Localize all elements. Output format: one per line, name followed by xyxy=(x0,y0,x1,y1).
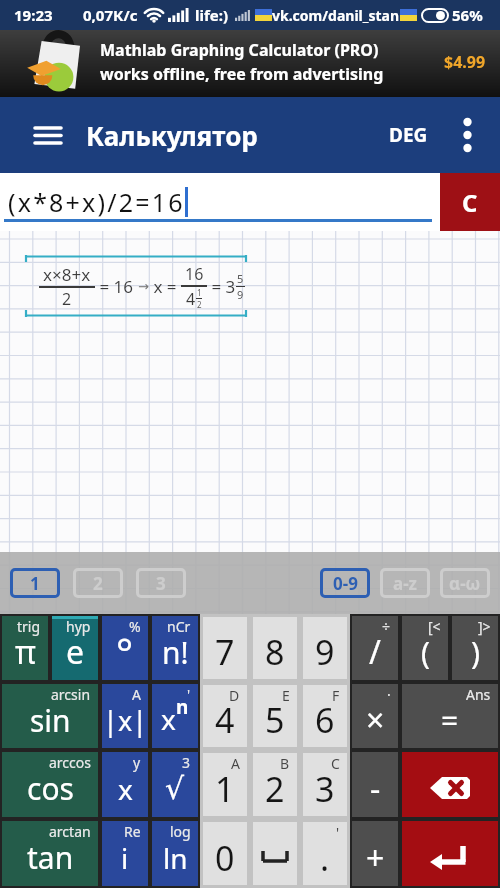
staticText: = 16 xyxy=(95,275,138,298)
button[interactable]: B xyxy=(253,753,297,816)
button[interactable]: 2 xyxy=(73,568,123,598)
staticText: 7 xyxy=(215,629,235,675)
button[interactable]: E xyxy=(253,685,297,747)
staticText: n xyxy=(176,694,189,720)
button[interactable] xyxy=(402,821,498,886)
staticText: hyp xyxy=(66,617,91,636)
staticText: x xyxy=(118,770,133,808)
staticText: 1 xyxy=(30,572,40,595)
staticText: |x| xyxy=(103,702,148,739)
staticText: Ans xyxy=(466,685,491,704)
button[interactable]: 1 xyxy=(10,568,60,598)
staticText: tan xyxy=(27,837,74,878)
staticText: 5 xyxy=(237,271,244,286)
button[interactable] xyxy=(402,752,498,817)
button[interactable]: α-ω xyxy=(440,568,490,598)
button[interactable] xyxy=(253,822,297,885)
staticText: 2 xyxy=(62,288,72,310)
staticText: 0,07К/c xyxy=(83,5,138,25)
staticText: 16 xyxy=(185,263,204,285)
staticText: A xyxy=(231,754,240,773)
button[interactable] xyxy=(454,113,480,157)
staticText: % xyxy=(129,617,141,636)
button[interactable]: log xyxy=(152,821,198,886)
staticText: 2 xyxy=(197,299,202,310)
button[interactable]: Ans xyxy=(402,684,498,748)
staticText: 19:23 xyxy=(14,5,53,25)
staticText: arctan xyxy=(49,822,91,841)
button[interactable]: C xyxy=(440,173,500,231)
button[interactable]: A xyxy=(203,753,247,816)
button[interactable]: Re xyxy=(102,821,148,886)
staticText: x xyxy=(161,700,176,738)
staticText: arccos xyxy=(49,753,91,772)
button[interactable]: % xyxy=(102,616,148,680)
staticText: Re xyxy=(124,822,141,841)
staticText: ( xyxy=(421,632,430,673)
button[interactable]: 3 xyxy=(136,568,186,598)
staticText: a-z xyxy=(393,572,418,595)
button[interactable]: · xyxy=(352,684,398,748)
button[interactable]: 7 xyxy=(203,617,247,679)
staticText: α-ω xyxy=(449,572,481,595)
button[interactable]: F xyxy=(303,685,347,747)
staticText: 4 xyxy=(215,697,235,743)
button[interactable]: C xyxy=(303,753,347,816)
staticText: sin xyxy=(30,700,71,741)
button[interactable]: - xyxy=(352,752,398,817)
button[interactable] xyxy=(28,115,68,155)
staticText: 3 xyxy=(315,766,335,812)
button[interactable]: ]> xyxy=(452,616,498,680)
staticText: arcsin xyxy=(51,685,91,704)
button[interactable]: 0-9 xyxy=(320,568,370,598)
button[interactable]: ' xyxy=(152,684,198,748)
staticText: + xyxy=(366,836,385,880)
staticText: B xyxy=(280,754,290,773)
staticText: ln xyxy=(163,839,188,877)
button[interactable]: 9 xyxy=(303,617,347,679)
staticText: cos xyxy=(27,768,74,809)
button[interactable]: trig xyxy=(2,616,48,680)
button[interactable]: arctan xyxy=(2,821,98,886)
button[interactable]: DEG xyxy=(389,122,428,148)
button[interactable]: ' xyxy=(303,822,347,885)
button[interactable]: 0 xyxy=(203,822,247,885)
staticText: e xyxy=(66,630,85,674)
button[interactable]: nCr xyxy=(152,616,198,680)
staticText: E xyxy=(282,686,290,705)
button[interactable]: 3 xyxy=(152,752,198,817)
staticText: life:) xyxy=(195,5,229,25)
staticText: / xyxy=(369,630,381,674)
staticText: 4 xyxy=(186,288,196,310)
button[interactable]: A xyxy=(102,684,148,748)
button[interactable]: ÷ xyxy=(352,616,398,680)
button[interactable]: arcsin xyxy=(2,684,98,748)
button[interactable]: D xyxy=(203,685,247,747)
staticText: (x*8+x)/2=16 xyxy=(8,185,185,219)
staticText: $4.99 xyxy=(444,51,486,73)
staticText: A xyxy=(132,685,141,704)
staticText: ° xyxy=(116,625,134,679)
button[interactable]: + xyxy=(352,821,398,886)
staticText: 1 xyxy=(215,766,235,812)
staticText: 2 xyxy=(265,766,285,812)
staticText: π xyxy=(15,630,36,674)
staticText: y xyxy=(133,753,141,772)
staticText: 9 xyxy=(237,287,244,302)
staticText: 6 xyxy=(315,697,335,743)
button[interactable]: [< xyxy=(402,616,448,680)
staticText: - xyxy=(370,767,381,811)
staticText: 9 xyxy=(315,629,335,675)
button[interactable]: Mathlab Graphing Calculator (PRO) xyxy=(0,30,500,97)
staticText: x×8+x xyxy=(43,263,91,286)
staticText: ' xyxy=(336,823,340,842)
staticText: 3 xyxy=(182,753,191,772)
staticText: 5 xyxy=(265,697,285,743)
button[interactable]: hyp xyxy=(52,616,98,680)
button[interactable]: y xyxy=(102,752,148,817)
staticText: 8 xyxy=(265,629,285,675)
button[interactable]: a-z xyxy=(380,568,430,598)
button[interactable]: arccos xyxy=(2,752,98,817)
button[interactable]: 8 xyxy=(253,617,297,679)
staticText: 1 xyxy=(197,287,202,298)
